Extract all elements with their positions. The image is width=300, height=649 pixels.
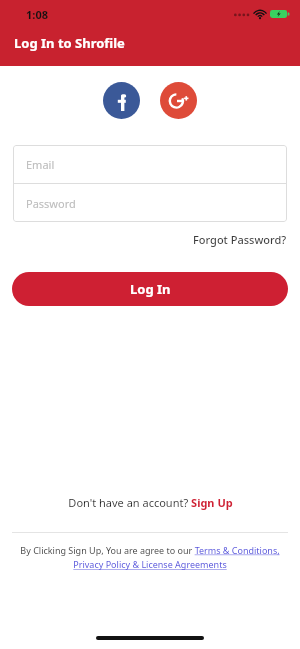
staticText: Email [26,157,55,172]
button[interactable]: Sign in with Facebook [103,82,140,119]
staticText: Log In to Shrofile [14,34,125,52]
button[interactable]: Log In [12,272,288,306]
button[interactable]: By Clicking Sign Up, You are agree to ou… [14,544,286,571]
button[interactable]: Sign in with Google Plus [160,82,197,119]
staticText: Forgot Password? [193,232,287,247]
button[interactable]: Don't have an account? Sign Up [0,491,300,514]
staticText: Log In [130,280,171,298]
staticText: By Clicking Sign Up, You are agree to ou… [14,544,286,571]
button[interactable]: Email [13,145,287,183]
staticText: Password [26,196,76,211]
button[interactable]: Password [13,184,287,222]
button[interactable]: Forgot Password? [193,230,300,249]
staticText: 1:08 [26,7,48,22]
staticText: Don't have an account? Sign Up [68,495,233,510]
